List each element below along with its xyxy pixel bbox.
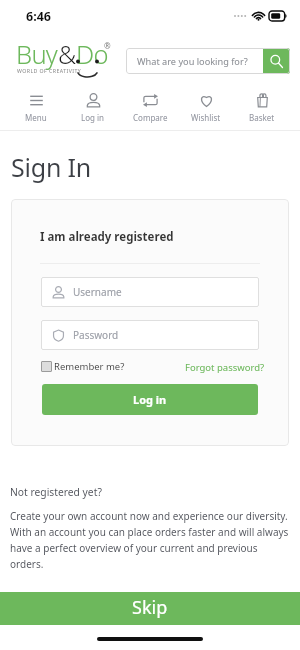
button[interactable]: Username: [41, 277, 259, 307]
button[interactable]: Log in: [42, 384, 258, 415]
staticText: Log in: [81, 112, 105, 123]
staticText: 6:46: [26, 8, 51, 25]
button[interactable]: Wishlist: [178, 93, 234, 123]
staticText: &: [58, 37, 76, 72]
button[interactable]: Basket: [234, 93, 290, 123]
staticText: Username: [73, 285, 122, 299]
button[interactable]: What are you looking for?: [126, 48, 290, 74]
staticText: I am already registered: [40, 229, 174, 245]
button[interactable]: Password: [41, 320, 259, 350]
staticText: Buy: [16, 37, 58, 72]
staticText: Create your own account now and experien…: [10, 509, 290, 570]
button[interactable]: Menu: [8, 93, 64, 123]
staticText: Password: [73, 328, 119, 342]
staticText: Sign In: [11, 150, 92, 184]
staticText: Remember me?: [54, 360, 125, 373]
staticText: Compare: [133, 112, 168, 123]
staticText: ®: [104, 40, 111, 51]
button[interactable]: Forgot password?: [185, 361, 265, 374]
staticText: Menu: [25, 112, 47, 123]
staticText: What are you looking for?: [137, 55, 263, 68]
button[interactable]: Log in: [65, 93, 121, 123]
button[interactable]: Remember me?: [41, 360, 125, 373]
staticText: Basket: [249, 112, 275, 123]
button[interactable]: Skip: [0, 592, 300, 625]
staticText: WORLD OF CREATIVITY: [17, 67, 82, 74]
staticText: Wishlist: [191, 112, 221, 123]
staticText: Do: [76, 37, 108, 72]
staticText: Skip: [132, 595, 168, 620]
staticText: Log in: [133, 392, 167, 407]
button[interactable]: Compare: [122, 93, 178, 123]
staticText: Not registered yet?: [10, 485, 102, 499]
